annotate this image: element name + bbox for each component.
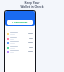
button[interactable]: [7, 31, 33, 36]
button[interactable]: [7, 45, 33, 50]
staticText: Keep Your Wallet in Check: [20, 1, 44, 9]
button[interactable]: [7, 49, 33, 54]
button[interactable]: [7, 36, 33, 41]
button[interactable]: [7, 40, 33, 45]
staticText: + Add money: [12, 20, 28, 23]
button[interactable]: + Add money: [7, 20, 33, 25]
